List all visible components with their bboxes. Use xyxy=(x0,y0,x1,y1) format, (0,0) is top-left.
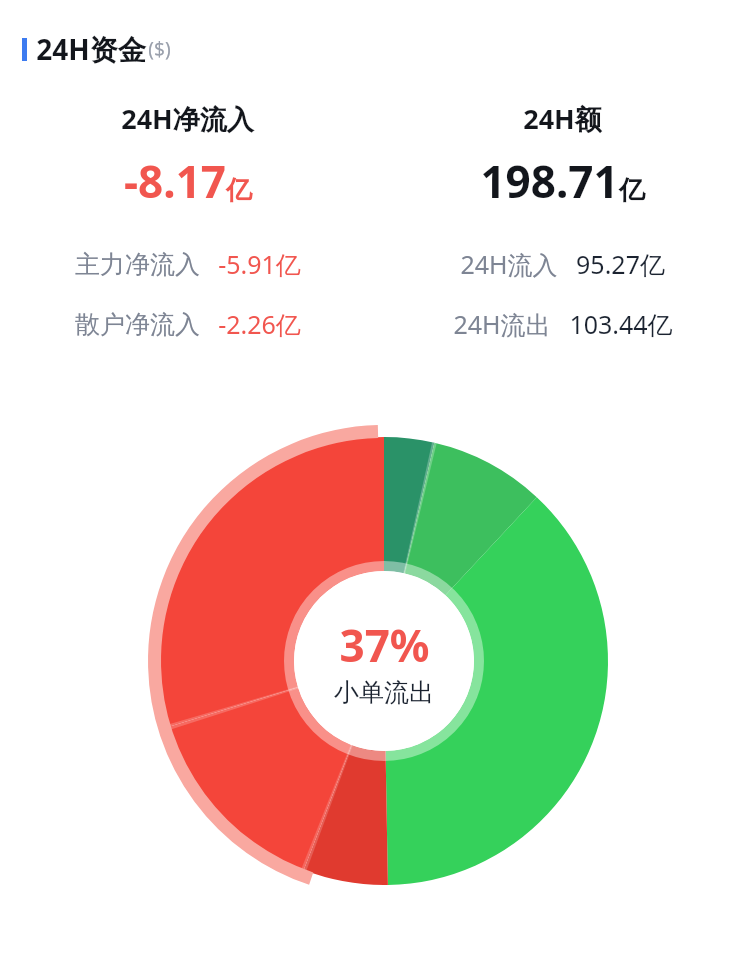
button[interactable]: 24H流出 xyxy=(453,307,673,341)
staticText: -5.91亿 xyxy=(218,247,301,281)
staticText: 24H净流入 xyxy=(121,100,254,137)
staticText: 103.44亿 xyxy=(569,307,673,341)
button[interactable]: 资金流向占比环形图 xyxy=(134,411,634,911)
staticText: 散户净流入 xyxy=(75,309,200,340)
staticText: -2.26亿 xyxy=(218,307,301,341)
staticText: 198.71 xyxy=(480,151,619,211)
staticText: 95.27亿 xyxy=(576,247,665,281)
staticText: 24H流出 xyxy=(453,307,551,341)
button[interactable]: 24H流入 xyxy=(460,247,665,281)
staticText: 亿 xyxy=(619,174,645,207)
staticText: 小单流出 xyxy=(334,677,434,708)
staticText: 24H额 xyxy=(523,100,602,137)
staticText: ($) xyxy=(148,36,171,62)
staticText: 24H流入 xyxy=(460,247,558,281)
button[interactable]: 主力净流入 xyxy=(75,247,301,281)
staticText: 24H资金 xyxy=(36,30,146,68)
button[interactable]: 散户净流入 xyxy=(75,307,301,341)
staticText: -8.17 xyxy=(124,151,226,211)
staticText: 亿 xyxy=(226,174,252,207)
staticText: 37% xyxy=(339,615,430,675)
button[interactable]: 24H资金 xyxy=(22,30,750,68)
staticText: 主力净流入 xyxy=(75,249,200,280)
